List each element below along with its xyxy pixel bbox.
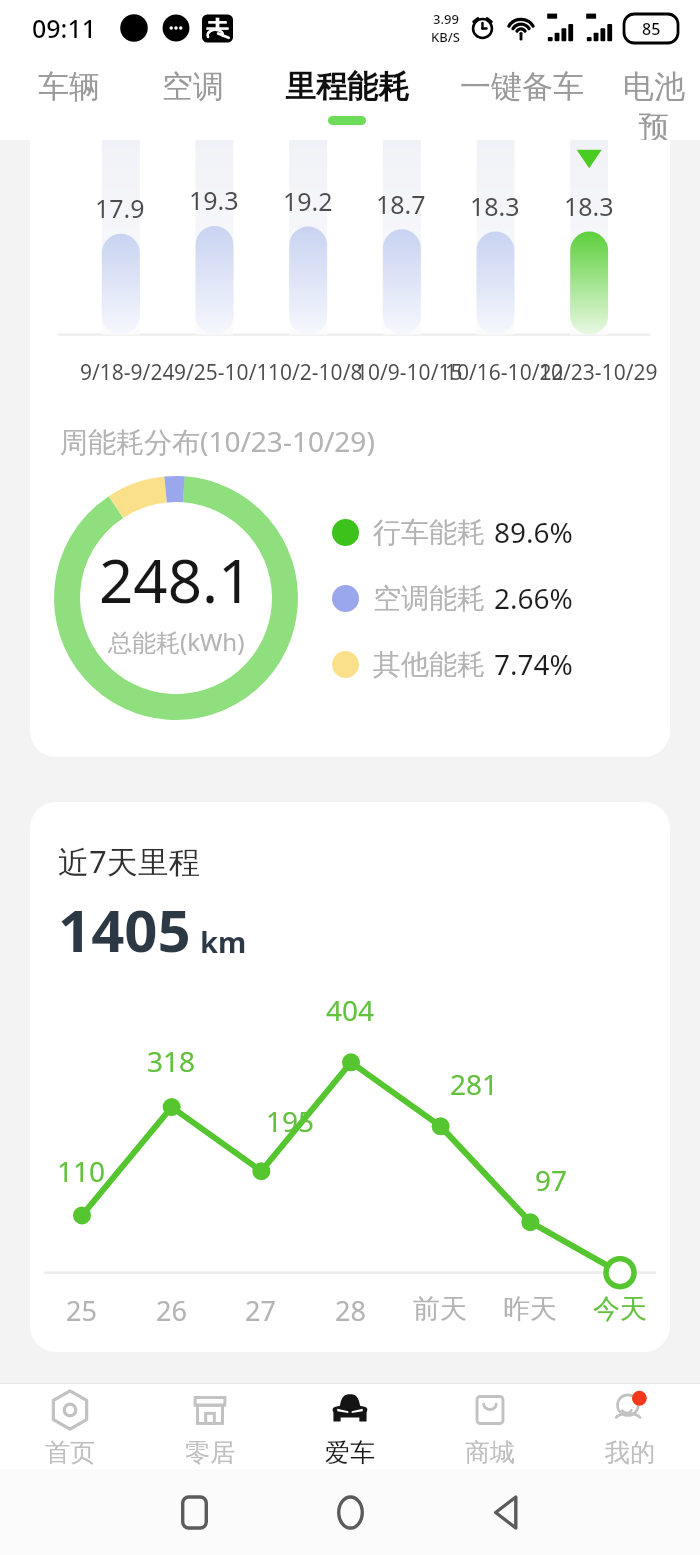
staticText: 总能耗(kWh) [108, 625, 245, 658]
staticText: 85 [642, 18, 661, 40]
staticText: 19.3 [189, 183, 239, 217]
staticText: 10/9-10/15 [356, 358, 463, 387]
staticText: 25 [66, 1292, 97, 1329]
staticText: 26 [156, 1292, 187, 1329]
staticText: 2.66% [494, 579, 573, 617]
button[interactable]: 空调能耗 [332, 579, 573, 617]
staticText: 今天 [593, 1292, 647, 1326]
staticText: 17.9 [95, 191, 145, 225]
staticText: 281 [450, 1065, 499, 1103]
button[interactable]: Recent apps [148, 1469, 240, 1555]
staticText: 近7天里程 [58, 840, 200, 882]
staticText: 27 [245, 1292, 276, 1329]
staticText: 零居 [185, 1437, 235, 1468]
staticText: 1405 [58, 890, 191, 969]
staticText: 前天 [413, 1292, 467, 1326]
staticText: 28 [335, 1292, 366, 1329]
staticText: 其他能耗 [373, 647, 485, 682]
staticText: 我的 [605, 1437, 655, 1468]
staticText: 9/18-9/24 [80, 358, 175, 387]
staticText: 空调 [162, 67, 224, 106]
staticText: 195 [266, 1102, 315, 1140]
staticText: 18.3 [564, 189, 614, 223]
button[interactable]: 爱车 [280, 1384, 420, 1469]
button[interactable]: 行车能耗 [332, 513, 573, 551]
staticText: km [200, 922, 247, 961]
staticText: 空调能耗 [373, 581, 485, 616]
staticText: 一键备车 [460, 67, 584, 106]
staticText: 7.74% [494, 645, 573, 683]
button[interactable]: 零居 [140, 1384, 280, 1469]
staticText: 09:11 [32, 11, 97, 45]
staticText: 商城 [465, 1437, 515, 1468]
button[interactable]: 车辆 [10, 56, 128, 140]
staticText: 首页 [45, 1437, 95, 1468]
button[interactable]: 商城 [420, 1384, 560, 1469]
button[interactable]: Home [304, 1469, 396, 1555]
staticText: 404 [326, 991, 375, 1029]
staticText: 18.7 [376, 187, 426, 221]
staticText: 10/23-10/29 [539, 358, 658, 387]
staticText: 10/2-10/8 [268, 358, 363, 387]
staticText: 248.1 [99, 539, 253, 621]
staticText: 318 [147, 1042, 196, 1080]
staticText: 10/16-10/22 [445, 358, 564, 387]
staticText: KB/S [431, 28, 460, 46]
staticText: 周能耗分布(10/23-10/29) [60, 422, 375, 460]
staticText: 电池预 [608, 67, 700, 140]
staticText: 9/25-10/1 [174, 358, 269, 387]
button[interactable]: Back [460, 1469, 552, 1555]
staticText: 19.2 [283, 184, 333, 218]
staticText: 89.6% [494, 513, 573, 551]
button[interactable]: 里程能耗 [258, 56, 436, 140]
button[interactable]: 电池预 [608, 56, 700, 140]
staticText: 车辆 [38, 67, 100, 106]
staticText: 昨天 [503, 1292, 557, 1326]
button[interactable]: 其他能耗 [332, 645, 573, 683]
staticText: 里程能耗 [285, 67, 409, 106]
button[interactable]: 空调 [128, 56, 258, 140]
staticText: 行车能耗 [373, 515, 485, 550]
staticText: 爱车 [325, 1437, 375, 1468]
staticText: 110 [57, 1152, 106, 1190]
button[interactable]: 首页 [0, 1384, 140, 1469]
staticText: 3.99 [433, 10, 459, 28]
button[interactable]: 一键备车 [436, 56, 608, 140]
button[interactable]: 我的 [560, 1384, 700, 1469]
staticText: 18.3 [470, 189, 520, 223]
staticText: 97 [535, 1161, 568, 1199]
